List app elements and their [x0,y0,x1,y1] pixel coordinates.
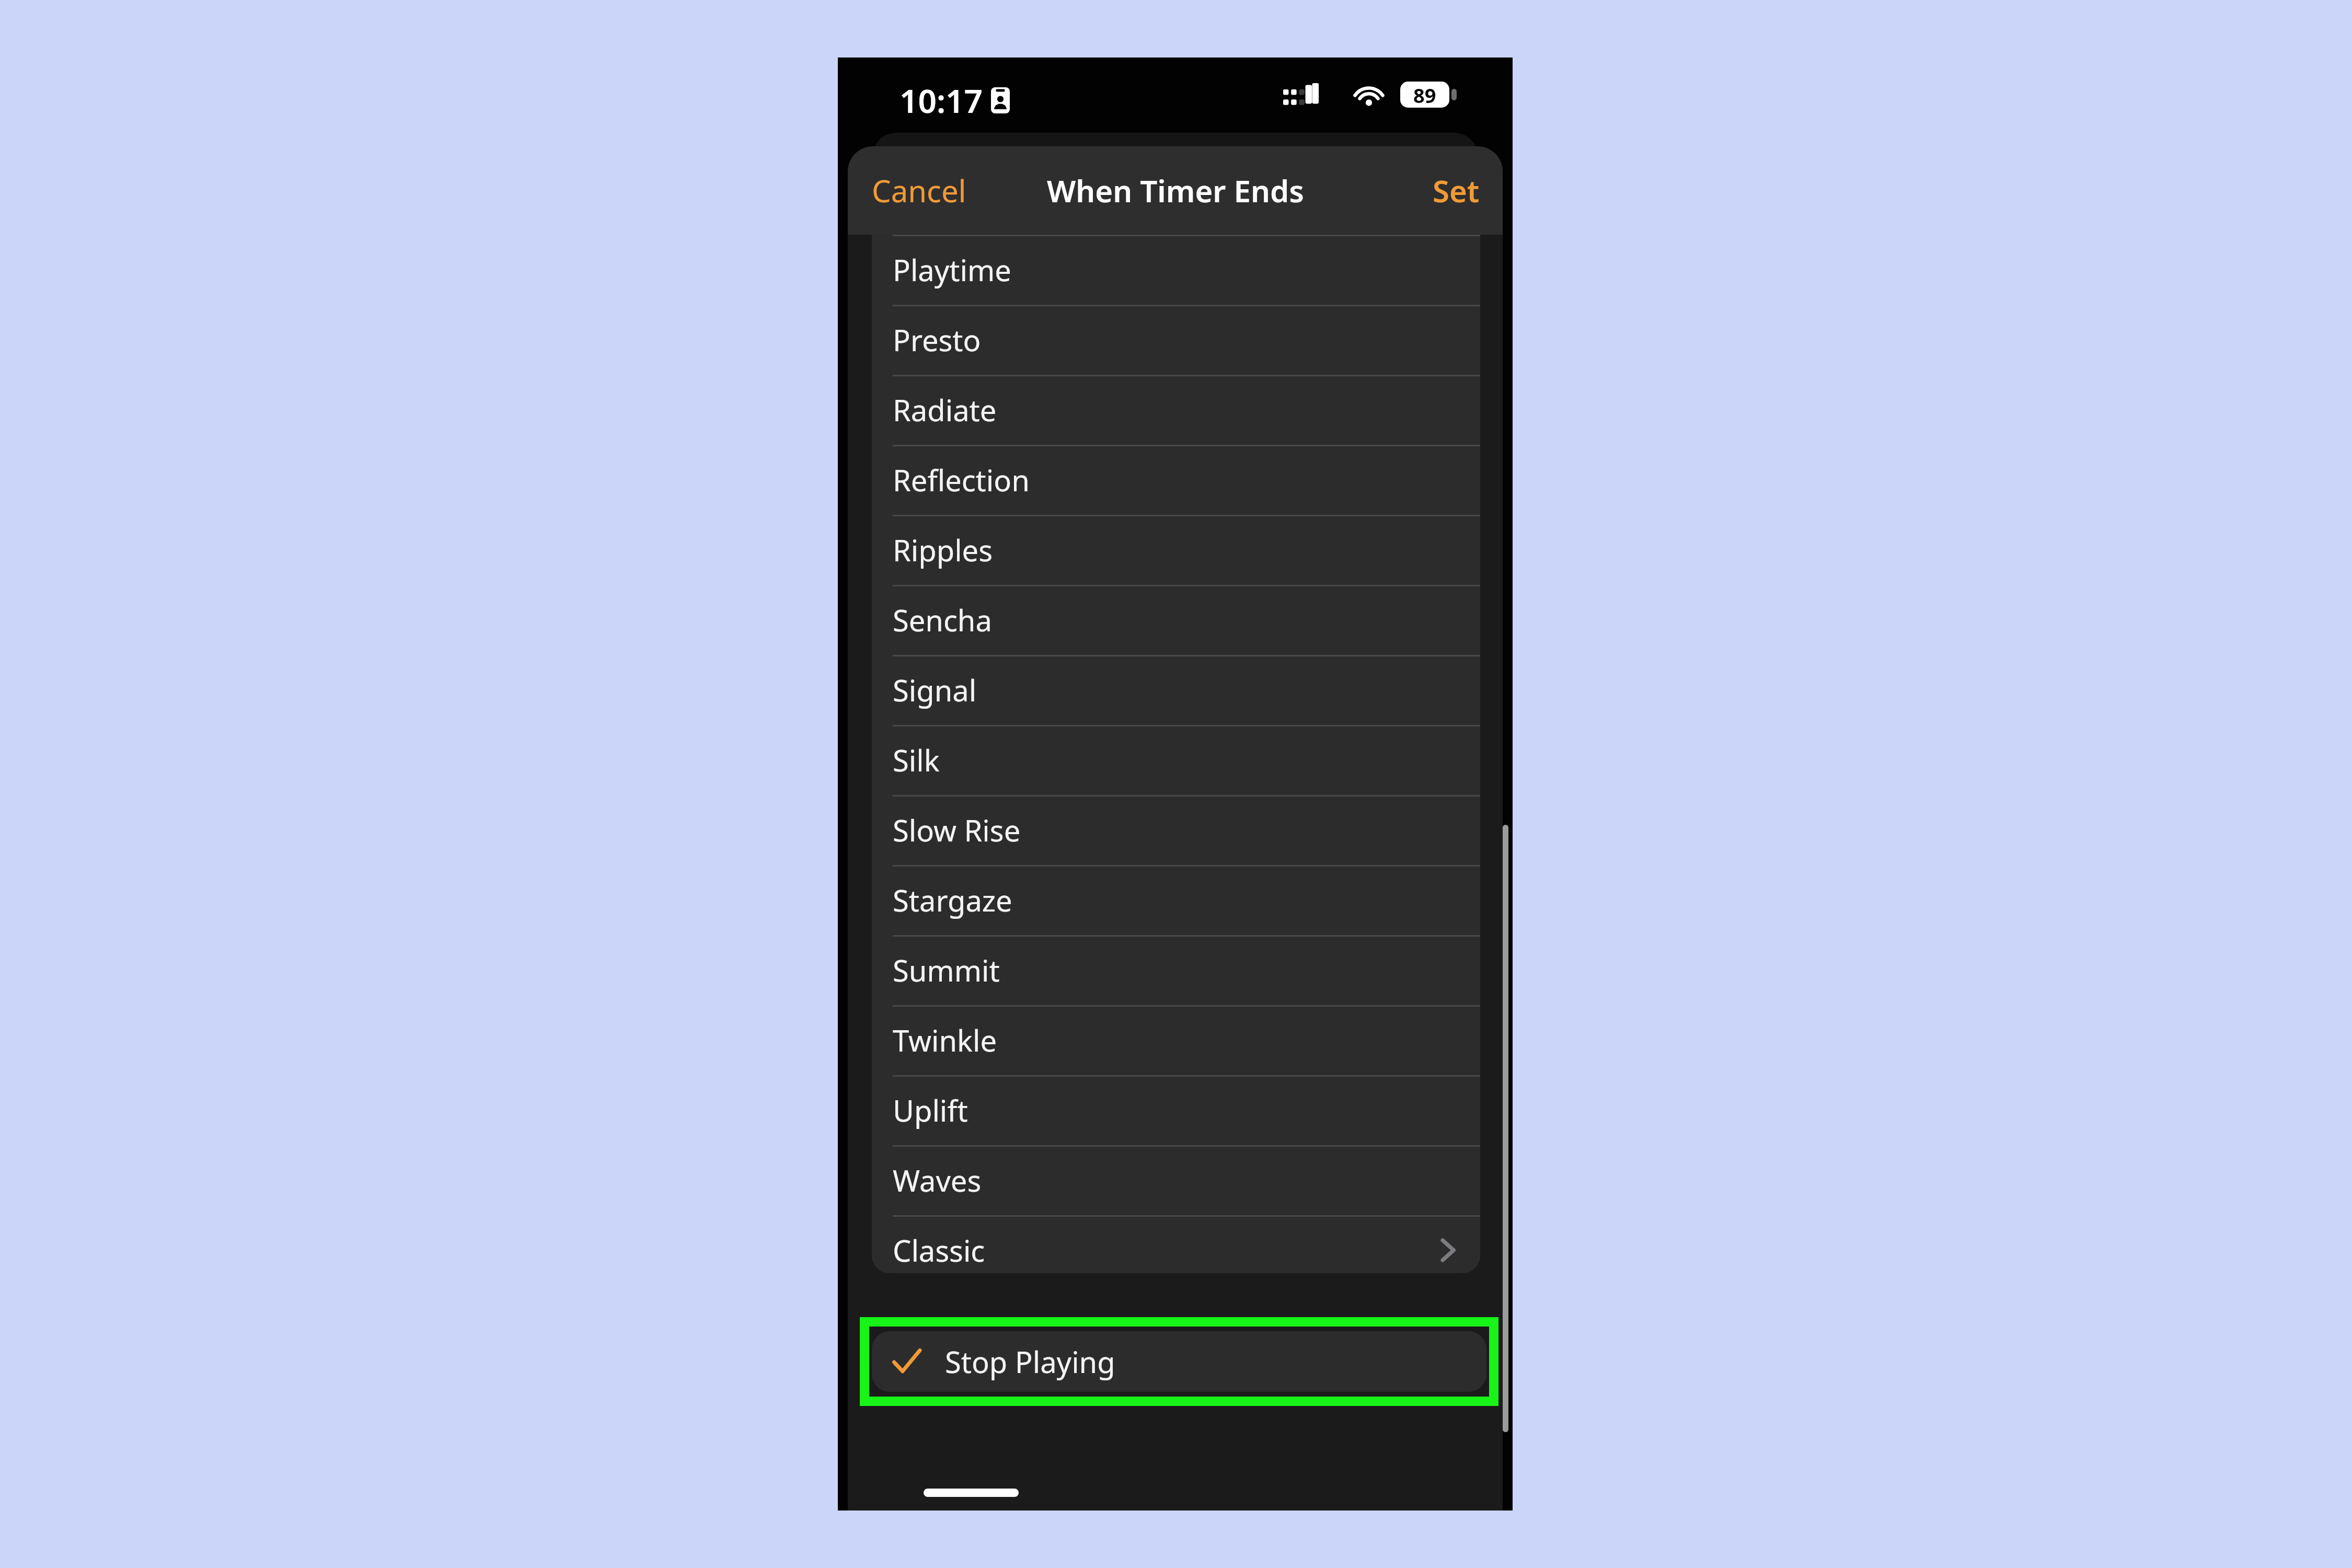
button[interactable]: Ripples [872,515,1480,585]
button[interactable]: Cancel [861,156,977,225]
staticText: Stargaze [893,880,1012,920]
button[interactable]: Signal [872,655,1480,725]
staticText: Uplift [893,1090,968,1130]
button[interactable]: Reflection [872,445,1480,515]
button[interactable]: Summit [872,935,1480,1005]
button[interactable]: Radiate [872,375,1480,445]
button[interactable]: Set [1422,156,1490,225]
button[interactable]: Slow Rise [872,795,1480,865]
button[interactable]: Waves [872,1145,1480,1215]
button[interactable]: Uplift [872,1075,1480,1145]
staticText: Set [1433,170,1480,211]
button[interactable]: Stargaze [872,865,1480,935]
button[interactable]: Sencha [872,585,1480,655]
staticText: 89 [1413,82,1436,108]
staticText: Twinkle [893,1020,997,1060]
staticText: Waves [893,1160,982,1200]
staticText: Playtime [893,250,1011,290]
staticText: Classic [893,1230,985,1270]
staticText: Reflection [893,460,1030,500]
button[interactable]: Playtime [872,235,1480,305]
button[interactable]: Stop Playing [872,1331,1486,1392]
button[interactable]: Twinkle [872,1005,1480,1075]
staticText: When Timer Ends [1047,170,1304,211]
button[interactable]: Classic [872,1215,1480,1273]
staticText: Cancel [872,170,966,211]
staticText: 10:17 [900,78,983,122]
staticText: Silk [893,740,940,780]
other: Classic sounds [1439,1236,1457,1265]
button[interactable]: Silk [872,725,1480,795]
staticText: Presto [893,320,981,360]
staticText: Sencha [893,600,992,640]
staticText: Signal [893,670,977,710]
staticText: Stop Playing [945,1342,1115,1381]
button[interactable]: Presto [872,305,1480,375]
staticText: Radiate [893,390,997,430]
staticText: Slow Rise [893,810,1021,850]
staticText: Ripples [893,530,993,570]
staticText: Summit [893,950,1000,990]
